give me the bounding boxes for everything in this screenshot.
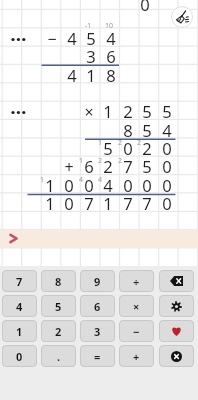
staticText: − xyxy=(133,324,140,339)
button[interactable]: 8 xyxy=(41,270,76,292)
button[interactable]: − xyxy=(119,320,154,342)
staticText: 10 xyxy=(95,21,123,31)
staticText: 0 xyxy=(114,137,142,160)
button[interactable]: Backspace xyxy=(159,270,194,292)
button[interactable]: Clear all xyxy=(171,6,193,28)
staticText: 2 xyxy=(106,156,134,166)
staticText: 2 xyxy=(133,137,161,160)
button[interactable]: 6 xyxy=(80,295,115,317)
staticText: 9 xyxy=(94,274,101,289)
button[interactable]: 7 xyxy=(2,270,37,292)
staticText: 6 xyxy=(97,45,125,68)
staticText: + xyxy=(133,349,140,364)
staticText: 8 xyxy=(55,274,62,289)
staticText: 7 xyxy=(114,155,142,178)
staticText: 0 xyxy=(153,192,181,215)
button[interactable]: Clear xyxy=(159,345,194,367)
staticText: 2 xyxy=(106,138,134,148)
staticText: = xyxy=(94,349,101,364)
button[interactable]: 9 xyxy=(80,270,115,292)
staticText: 4 xyxy=(58,64,86,87)
staticText: 2 xyxy=(125,138,153,148)
staticText: 0 xyxy=(55,174,83,197)
staticText: 1 xyxy=(36,174,64,197)
staticText: − xyxy=(38,28,66,50)
button[interactable]: = xyxy=(80,345,115,367)
staticText: 2 xyxy=(114,100,142,123)
staticText: 7 xyxy=(75,192,103,215)
button[interactable]: + xyxy=(119,345,154,367)
staticText: 0 xyxy=(153,155,181,178)
staticText: 7 xyxy=(133,192,161,215)
staticText: 0 xyxy=(153,174,181,197)
staticText: . xyxy=(57,349,61,364)
staticText: 4 xyxy=(94,174,122,197)
staticText: 4 xyxy=(153,119,181,142)
staticText: 1 xyxy=(94,100,122,123)
staticText: 7 xyxy=(114,192,142,215)
staticText: 3 xyxy=(94,324,101,339)
staticText: 4 xyxy=(67,175,95,185)
staticText: + xyxy=(55,156,83,178)
button[interactable]: Settings xyxy=(159,295,194,317)
staticText: × xyxy=(133,299,140,314)
staticText: 5 xyxy=(55,299,62,314)
staticText: 0 xyxy=(133,174,161,197)
staticText: 0 xyxy=(114,174,142,197)
button[interactable]: 1 xyxy=(2,320,37,342)
staticText: 0 xyxy=(16,349,23,364)
staticText: 4 xyxy=(97,27,125,50)
staticText: 5 xyxy=(153,100,181,123)
staticText: 4 xyxy=(16,299,23,314)
staticText: × xyxy=(75,101,103,123)
staticText: -1 xyxy=(74,21,102,31)
button[interactable]: × xyxy=(119,295,154,317)
button[interactable]: ÷ xyxy=(119,270,154,292)
staticText: 6 xyxy=(75,155,103,178)
staticText: 8 xyxy=(97,64,125,87)
staticText: 5 xyxy=(133,119,161,142)
staticText: 1 xyxy=(36,192,64,215)
staticText: 5 xyxy=(94,137,122,160)
staticText: 1 xyxy=(86,138,114,148)
staticText: 2 xyxy=(86,156,114,166)
button[interactable]: 3 xyxy=(80,320,115,342)
staticText: 6 xyxy=(94,299,101,314)
button[interactable]: 4 xyxy=(2,295,37,317)
button[interactable]: 2 xyxy=(41,320,76,342)
staticText: 1 xyxy=(28,175,56,185)
staticText: 0 xyxy=(55,192,83,215)
staticText: 1 xyxy=(16,324,23,339)
staticText: 5 xyxy=(77,27,105,50)
staticText: 0 xyxy=(131,0,159,16)
staticText: 5 xyxy=(133,100,161,123)
staticText: 7 xyxy=(16,274,23,289)
staticText: 0 xyxy=(75,174,103,197)
button[interactable]: Favourites xyxy=(159,320,194,342)
staticText: 2 xyxy=(94,155,122,178)
staticText: 1 xyxy=(67,156,95,166)
button[interactable]: 0 xyxy=(2,345,37,367)
staticText: 4 xyxy=(86,175,114,185)
button[interactable]: 5 xyxy=(41,295,76,317)
staticText: 3 xyxy=(77,45,105,68)
staticText: ÷ xyxy=(133,274,140,289)
staticText: 1 xyxy=(94,192,122,215)
staticText: 8 xyxy=(114,119,142,142)
staticText: 5 xyxy=(133,155,161,178)
staticText: 1 xyxy=(77,64,105,87)
staticText: 0 xyxy=(153,137,181,160)
staticText: 4 xyxy=(58,27,86,50)
staticText: 2 xyxy=(55,324,62,339)
button[interactable]: . xyxy=(41,345,76,367)
